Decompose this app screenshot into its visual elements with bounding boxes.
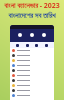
- staticText: বাংলা ক্যালেন্ডার - 2023: [4, 1, 60, 11]
- button[interactable]: [10, 73, 54, 78]
- button[interactable]: [10, 83, 54, 88]
- staticText: বাংলাদেশের সব তারিখ দিনপঞ্জি: [0, 11, 64, 20]
- button[interactable]: [10, 53, 54, 58]
- button[interactable]: [10, 63, 54, 68]
- button[interactable]: [10, 58, 54, 63]
- button[interactable]: [10, 78, 54, 83]
- button[interactable]: [10, 68, 54, 73]
- button[interactable]: [10, 48, 54, 53]
- button[interactable]: [10, 93, 54, 98]
- button[interactable]: [10, 88, 54, 93]
